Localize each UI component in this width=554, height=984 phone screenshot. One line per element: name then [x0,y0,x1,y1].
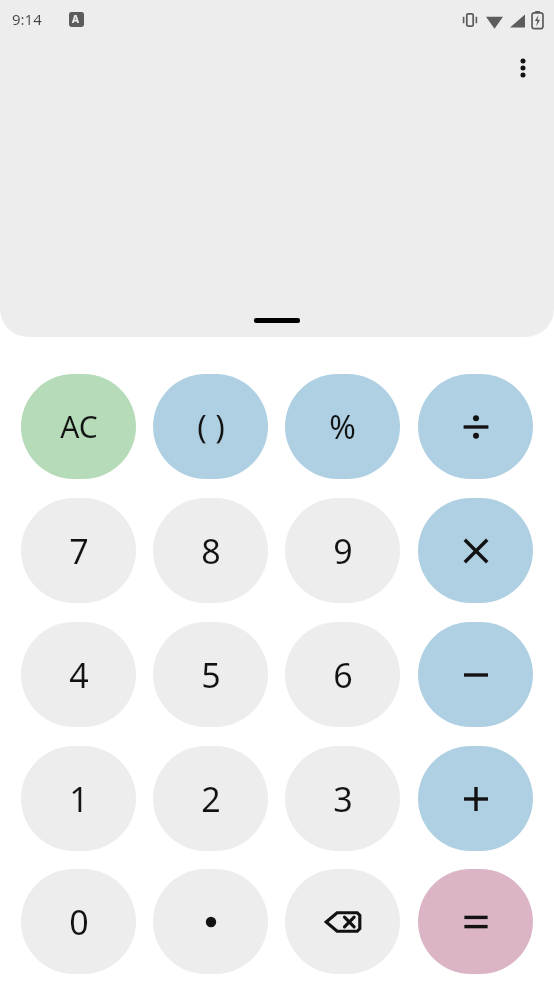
staticText: AC [60,406,98,447]
button[interactable]: Expand history [254,318,300,323]
staticText: 8 [201,528,221,574]
staticText: 7 [69,528,89,574]
staticText: 4 [69,652,89,698]
button[interactable]: 5 [153,622,268,727]
staticText: 5 [201,652,221,698]
button[interactable]: 6 [285,622,400,727]
button[interactable]: Add [418,746,533,851]
button[interactable]: % [285,374,400,479]
button[interactable]: AC [21,374,136,479]
button[interactable]: Decimal point [153,869,268,974]
button[interactable]: 3 [285,746,400,851]
button[interactable]: 9 [285,498,400,603]
button[interactable]: 0 [21,869,136,974]
staticText: 6 [333,652,353,698]
staticText: 3 [333,776,353,822]
button[interactable]: 8 [153,498,268,603]
staticText: 2 [201,776,221,822]
staticText: A [72,12,79,26]
staticText: 1 [69,776,89,822]
staticText: % [329,405,356,449]
staticText: 0 [69,899,89,945]
button[interactable]: Equals [418,869,533,974]
staticText: 9 [333,528,353,574]
button[interactable]: Divide [418,374,533,479]
button[interactable]: ( ) [153,374,268,479]
button[interactable]: More options [499,44,547,92]
button[interactable]: Backspace [285,869,400,974]
button[interactable]: 7 [21,498,136,603]
staticText: ( ) [197,405,225,449]
button[interactable]: Multiply [418,498,533,603]
button[interactable]: 1 [21,746,136,851]
staticText: 9:14 [12,9,42,29]
button[interactable]: Subtract [418,622,533,727]
button[interactable]: 2 [153,746,268,851]
button[interactable]: 4 [21,622,136,727]
